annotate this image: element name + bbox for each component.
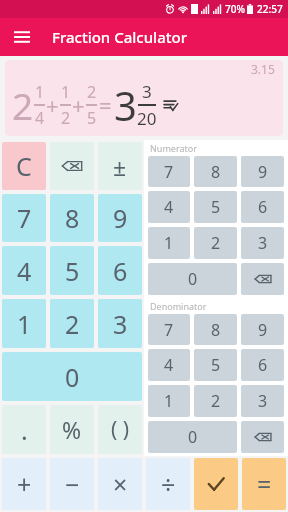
- button[interactable]: 2: [194, 227, 237, 259]
- button[interactable]: 4: [148, 349, 190, 381]
- button[interactable]: +: [2, 458, 46, 510]
- button[interactable]: 3: [98, 299, 142, 348]
- staticText: 2: [65, 307, 80, 341]
- staticText: +: [72, 90, 85, 120]
- button[interactable]: ÷: [146, 458, 190, 510]
- button[interactable]: 6: [241, 191, 284, 223]
- button[interactable]: 5: [194, 349, 237, 381]
- staticText: 1: [164, 390, 174, 412]
- staticText: 0: [188, 268, 198, 290]
- button[interactable]: %: [50, 405, 94, 454]
- staticText: ( ): [111, 415, 130, 444]
- staticText: +: [46, 90, 59, 120]
- staticText: 7: [164, 319, 174, 341]
- staticText: 3: [113, 307, 128, 341]
- button[interactable]: 8: [194, 156, 237, 187]
- staticText: 7: [164, 161, 174, 183]
- staticText: 6: [258, 354, 268, 376]
- button[interactable]: 4: [2, 246, 46, 295]
- staticText: 2: [211, 232, 221, 254]
- staticText: =: [99, 90, 112, 120]
- button[interactable]: 4: [148, 191, 190, 223]
- button[interactable]: 8: [50, 194, 94, 242]
- staticText: 1: [164, 232, 174, 254]
- button[interactable]: 9: [241, 314, 284, 345]
- button[interactable]: 3.15: [5, 60, 283, 136]
- staticText: 2: [12, 80, 34, 130]
- staticText: 4: [35, 107, 45, 129]
- staticText: 70%: [225, 2, 245, 16]
- button[interactable]: 7: [2, 194, 46, 242]
- button[interactable]: 3: [241, 227, 284, 259]
- button[interactable]: Backspace: [50, 142, 94, 190]
- staticText: 20: [137, 107, 157, 130]
- button[interactable]: .: [2, 405, 46, 454]
- staticText: 7: [17, 201, 32, 235]
- staticText: Fraction Calculator: [52, 27, 187, 47]
- button[interactable]: C: [2, 142, 46, 190]
- button[interactable]: 8: [194, 314, 237, 345]
- staticText: ÷: [161, 467, 176, 501]
- button[interactable]: Backspace Numerator: [241, 263, 284, 295]
- button[interactable]: 9: [98, 194, 142, 242]
- staticText: 1: [35, 81, 45, 103]
- button[interactable]: 6: [98, 246, 142, 295]
- button[interactable]: 3: [241, 385, 284, 417]
- button[interactable]: ±: [98, 142, 142, 190]
- staticText: 1: [17, 307, 32, 341]
- staticText: Denominator: [150, 300, 207, 312]
- staticText: 3.15: [251, 61, 275, 77]
- staticText: 2: [211, 390, 221, 412]
- staticText: 3: [114, 78, 137, 132]
- staticText: 5: [211, 196, 221, 218]
- staticText: 4: [164, 196, 174, 218]
- staticText: 9: [258, 161, 268, 183]
- button[interactable]: Backspace Denominator: [241, 421, 284, 453]
- staticText: 3: [258, 390, 268, 412]
- button[interactable]: 1: [148, 227, 190, 259]
- button[interactable]: Show history: [161, 95, 181, 115]
- staticText: 3: [258, 232, 268, 254]
- button[interactable]: 7: [148, 314, 190, 345]
- staticText: 8: [211, 161, 221, 183]
- button[interactable]: Confirm: [194, 458, 238, 510]
- button[interactable]: 5: [194, 191, 237, 223]
- button[interactable]: −: [50, 458, 94, 510]
- button[interactable]: 0: [148, 421, 237, 453]
- staticText: 9: [258, 319, 268, 341]
- button[interactable]: 1: [2, 299, 46, 348]
- staticText: 8: [211, 319, 221, 341]
- button[interactable]: ×: [98, 458, 142, 510]
- button[interactable]: 1: [148, 385, 190, 417]
- button[interactable]: 9: [241, 156, 284, 187]
- button[interactable]: 0: [2, 352, 142, 401]
- staticText: ×: [113, 467, 128, 501]
- staticText: 0: [65, 360, 80, 394]
- staticText: ±: [113, 151, 127, 182]
- staticText: C: [16, 149, 32, 183]
- button[interactable]: 5: [50, 246, 94, 295]
- staticText: 2: [61, 107, 71, 129]
- staticText: 5: [65, 254, 80, 288]
- staticText: 5: [87, 107, 97, 129]
- staticText: Numerator: [150, 142, 197, 154]
- button[interactable]: ( ): [98, 405, 142, 454]
- staticText: 9: [113, 201, 128, 235]
- button[interactable]: 7: [148, 156, 190, 187]
- button[interactable]: 0: [148, 263, 237, 295]
- staticText: .: [21, 413, 28, 447]
- staticText: 1: [61, 81, 71, 103]
- button[interactable]: 6: [241, 349, 284, 381]
- button[interactable]: =: [242, 458, 286, 510]
- staticText: %: [62, 414, 82, 445]
- staticText: 0: [188, 426, 198, 448]
- staticText: 4: [17, 254, 32, 288]
- staticText: 3: [142, 80, 152, 103]
- staticText: 22:57: [257, 2, 283, 16]
- staticText: 6: [113, 254, 128, 288]
- button[interactable]: 2: [50, 299, 94, 348]
- staticText: 2: [87, 81, 97, 103]
- button[interactable]: Open navigation menu: [6, 21, 38, 53]
- button[interactable]: 2: [194, 385, 237, 417]
- staticText: 4: [164, 354, 174, 376]
